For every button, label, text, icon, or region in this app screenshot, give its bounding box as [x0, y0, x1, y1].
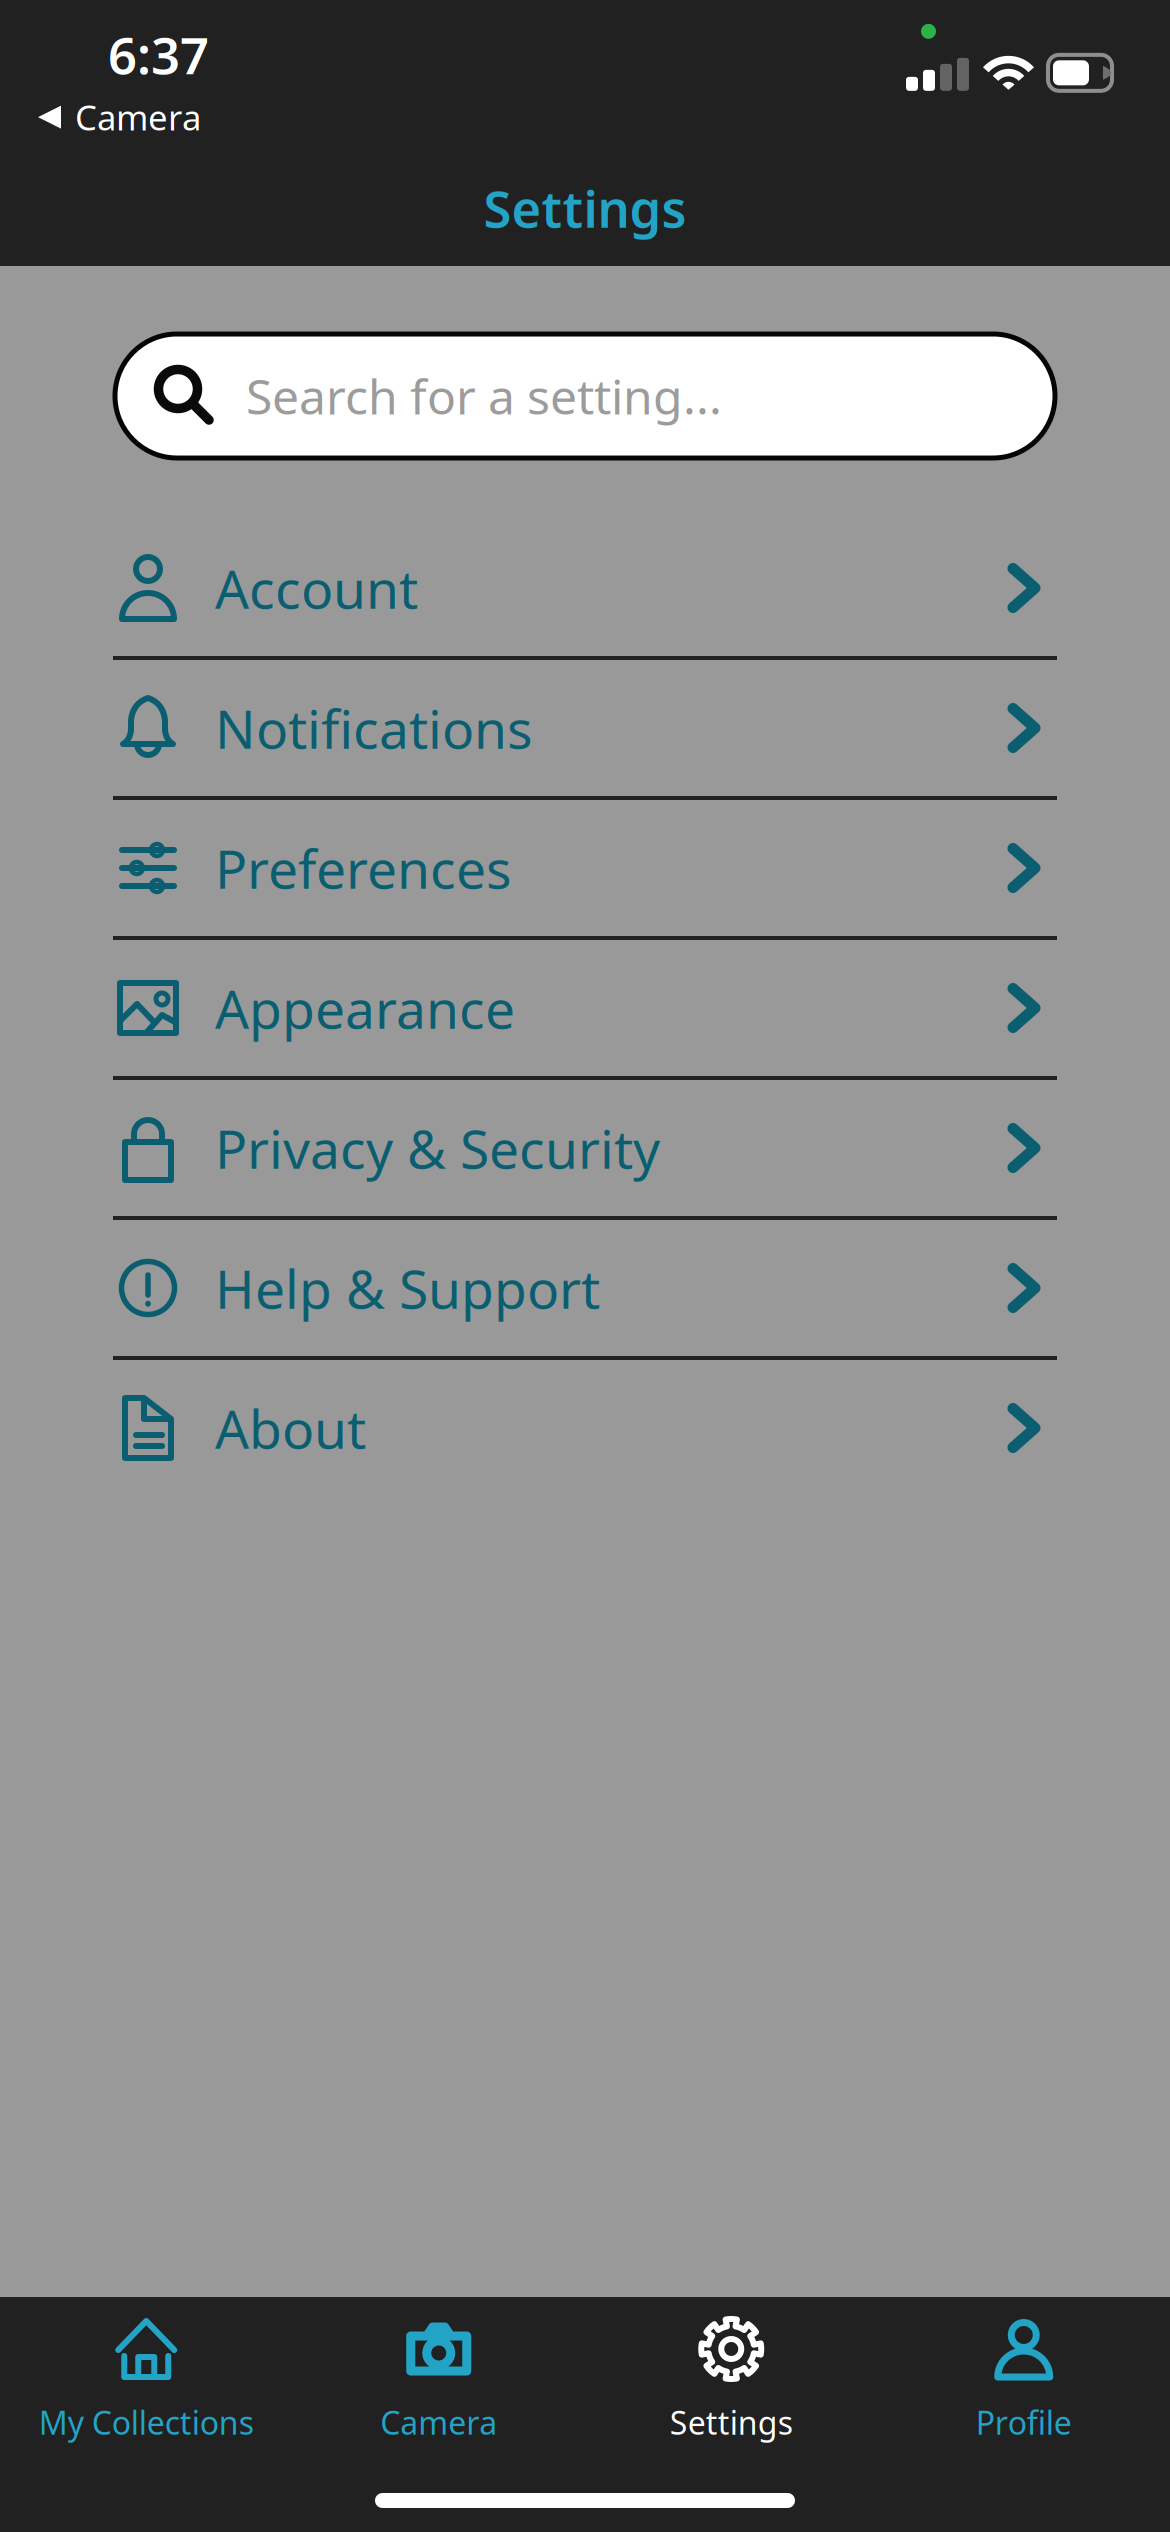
staticText: My Collections — [39, 2401, 254, 2443]
staticText: About — [215, 1393, 366, 1463]
button[interactable]: My Collections — [0, 2297, 292, 2443]
staticText: Settings — [670, 2401, 793, 2443]
staticText: Search for a setting... — [246, 364, 722, 428]
button[interactable]: Help & Support — [113, 1220, 1057, 1356]
staticText: Preferences — [215, 833, 512, 903]
staticText: Profile — [976, 2401, 1072, 2443]
button[interactable]: Privacy & Security — [113, 1080, 1057, 1216]
button[interactable]: Account — [113, 520, 1057, 656]
staticText: Help & Support — [215, 1253, 600, 1323]
staticText: Account — [215, 553, 418, 623]
staticText: Camera — [380, 2401, 497, 2443]
button[interactable]: Notifications — [113, 660, 1057, 796]
staticText: Settings — [483, 174, 686, 242]
button[interactable]: Preferences — [113, 800, 1057, 936]
button[interactable]: About — [113, 1360, 1057, 1496]
button[interactable]: Camera — [292, 2297, 585, 2443]
button[interactable]: Search for a setting... — [115, 334, 1055, 458]
button[interactable]: Settings — [585, 2297, 877, 2443]
staticText: 6:37 — [108, 21, 209, 88]
staticText: Camera — [75, 94, 201, 140]
staticText: Privacy & Security — [215, 1113, 660, 1183]
staticText: Notifications — [215, 693, 533, 763]
button[interactable]: Appearance — [113, 940, 1057, 1076]
staticText: Appearance — [215, 973, 515, 1043]
button[interactable]: Profile — [877, 2297, 1170, 2443]
